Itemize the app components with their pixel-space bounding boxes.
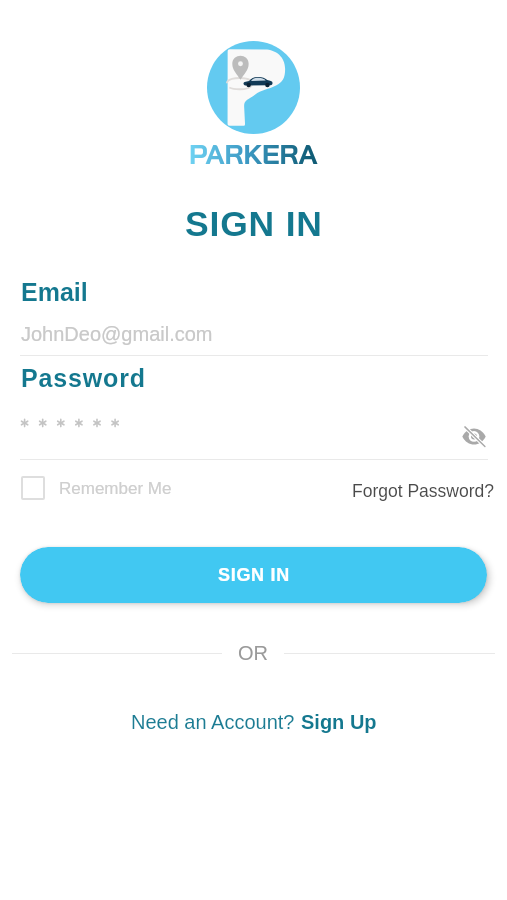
staticText: Email [21, 278, 88, 306]
staticText: JohnDeo@gmail.com [21, 323, 213, 345]
button[interactable]: Remember Me [21, 476, 172, 500]
staticText: PARKERA [189, 136, 318, 171]
button[interactable]: Show password [461, 424, 487, 448]
button[interactable]: SIGN IN [20, 547, 487, 603]
staticText: OR [238, 642, 268, 664]
staticText: Forgot Password? [352, 481, 495, 501]
button[interactable]: Forgot Password? [352, 481, 495, 501]
button[interactable]: Need an Account? [131, 711, 377, 733]
staticText: Password [21, 364, 146, 392]
staticText: Sign Up [301, 711, 377, 733]
staticText: SIGN IN [218, 565, 290, 585]
staticText: SIGN IN [185, 204, 323, 244]
staticText: Remember Me [59, 479, 172, 498]
staticText: Need an Account? [131, 711, 301, 733]
